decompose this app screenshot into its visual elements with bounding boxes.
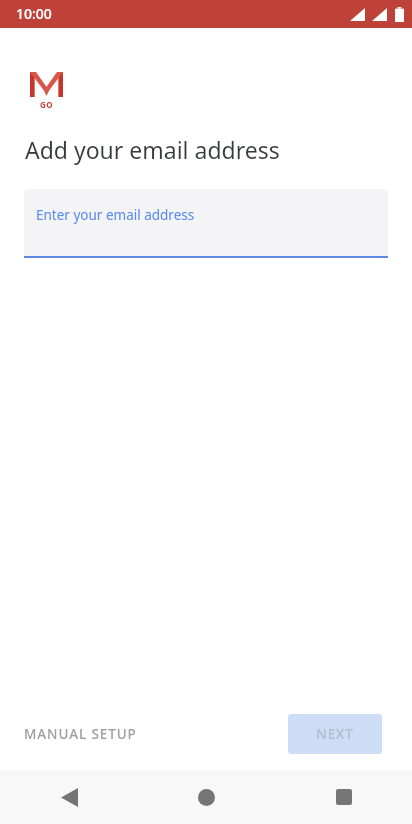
- staticText: Add your email address: [25, 134, 280, 165]
- button[interactable]: Back: [0, 770, 138, 824]
- button[interactable]: MANUAL SETUP: [12, 715, 149, 753]
- staticText: 10:00: [16, 4, 52, 23]
- staticText: MANUAL SETUP: [24, 725, 137, 743]
- staticText: NEXT: [316, 725, 354, 743]
- button[interactable]: NEXT: [288, 714, 382, 754]
- button[interactable]: Home: [138, 770, 275, 824]
- button[interactable]: Recent apps: [275, 770, 412, 824]
- button[interactable]: Enter your email address: [24, 189, 388, 258]
- staticText: GO: [40, 99, 54, 110]
- staticText: Enter your email address: [36, 206, 195, 224]
